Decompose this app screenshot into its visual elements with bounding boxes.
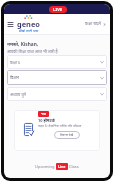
staticText: विज्ञान <box>10 75 20 80</box>
staticText: सीखो अपनी भाषा <box>19 29 39 33</box>
staticText: नमस्ते, Kishan, <box>7 41 39 48</box>
staticText: कक्षा 6 <box>10 60 21 65</box>
staticText: नया <box>41 112 46 116</box>
staticText: अध्याय चुनें <box>10 92 27 97</box>
button[interactable]: अध्याय चुनें <box>7 87 107 101</box>
button[interactable]: नया <box>14 110 100 151</box>
staticText: कक्षा बदलें <box>85 21 101 27</box>
staticText: Upcoming <box>35 164 55 169</box>
staticText: Class <box>69 164 79 169</box>
staticText: विवरण देखें <box>60 133 74 137</box>
button[interactable]: विज्ञान <box>7 70 107 85</box>
button[interactable]: विवरण देखें <box>54 131 80 139</box>
staticText: 10 होमवर्क <box>38 118 55 123</box>
button[interactable]: कक्षा बदलें <box>85 21 106 27</box>
button[interactable]: कक्षा 6 <box>7 55 107 69</box>
staticText: LIVE <box>53 7 63 12</box>
staticText: Live <box>58 164 66 169</box>
button[interactable]: Menu <box>6 20 14 28</box>
button[interactable]: LIVE <box>49 6 67 13</box>
staticText: geneo <box>17 19 40 29</box>
staticText: कक्षा 6: वैज्ञानिक तरीके और कौशल <box>38 123 82 128</box>
staticText: आपकी शिक्षा यात्रा आज भी जारी है <box>7 49 58 54</box>
